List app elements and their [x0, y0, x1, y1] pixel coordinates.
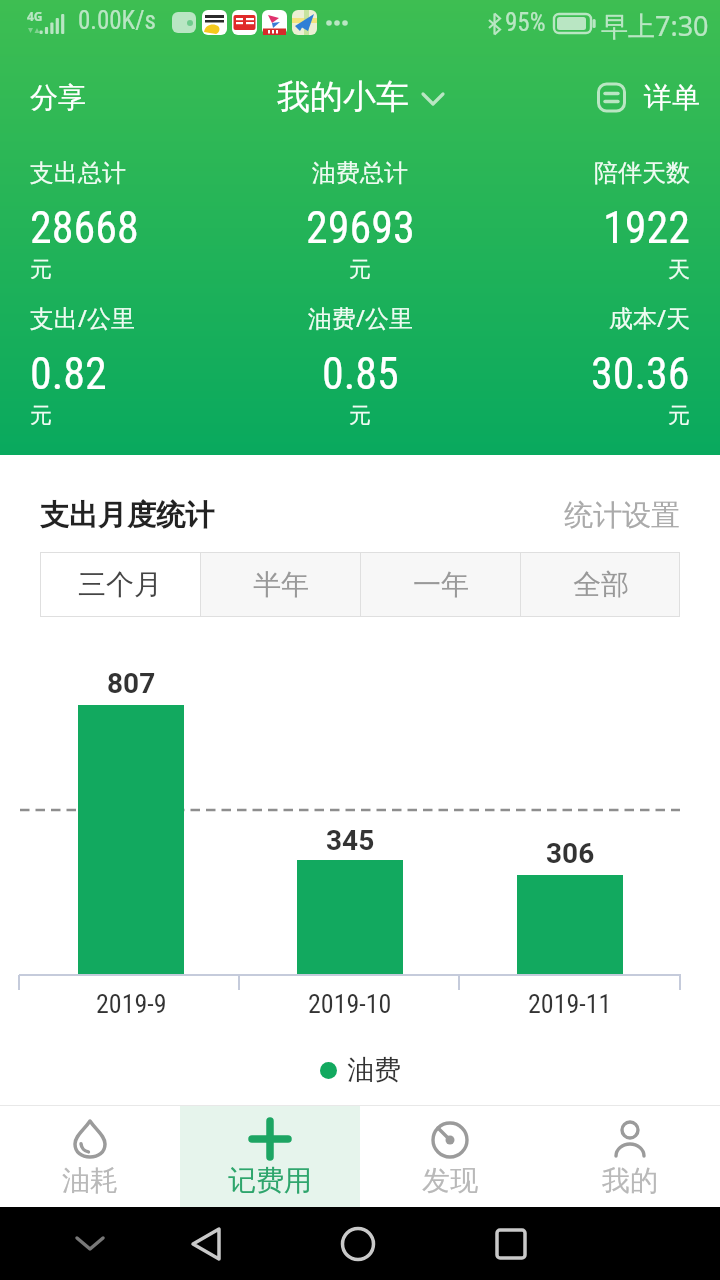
staticText: 29693: [306, 202, 415, 254]
staticText: 345: [326, 824, 375, 857]
staticText: 0.82: [30, 348, 107, 400]
staticText: 28668: [30, 202, 139, 254]
staticText: 一年: [413, 567, 469, 602]
staticText: 4G: [27, 8, 43, 24]
staticText: 支出总计: [30, 158, 126, 188]
staticText: 306: [546, 837, 595, 870]
staticText: 元: [349, 402, 371, 430]
staticText: 天: [668, 256, 690, 284]
staticText: 30.36: [591, 348, 690, 400]
staticText: 支出月度统计: [40, 497, 214, 534]
staticText: 元: [668, 402, 690, 430]
button[interactable]: 记费用: [180, 1105, 360, 1207]
staticText: 油费总计: [312, 158, 408, 188]
staticText: 元: [349, 256, 371, 284]
staticText: 早上7:30: [601, 7, 709, 44]
button[interactable]: 全部: [521, 552, 680, 617]
staticText: 0.00K/s: [78, 6, 156, 35]
staticText: 1922: [603, 202, 690, 254]
staticText: 我的小车: [277, 76, 409, 118]
staticText: 三个月: [78, 567, 162, 602]
staticText: 元: [30, 256, 52, 284]
staticText: 油费/公里: [308, 301, 413, 334]
staticText: 成本/天: [609, 301, 690, 334]
staticText: 2019-9: [96, 989, 167, 1019]
button[interactable]: 半年: [201, 552, 360, 617]
button[interactable]: 详单: [597, 80, 700, 115]
staticText: 分享: [30, 80, 86, 115]
button[interactable]: 油耗: [0, 1105, 180, 1207]
staticText: 油费: [347, 1053, 401, 1087]
staticText: 2019-10: [308, 989, 392, 1019]
staticText: 807: [107, 667, 156, 700]
staticText: 支出/公里: [30, 301, 135, 334]
staticText: 元: [30, 402, 52, 430]
staticText: 统计设置: [564, 497, 680, 534]
button[interactable]: 统计设置: [564, 497, 680, 534]
staticText: 0.85: [322, 348, 399, 400]
staticText: 记费用: [228, 1163, 312, 1198]
staticText: 发现: [422, 1163, 478, 1198]
staticText: 陪伴天数: [594, 158, 690, 188]
staticText: 我的: [602, 1163, 658, 1198]
button[interactable]: 三个月: [40, 552, 200, 617]
button[interactable]: 一年: [361, 552, 520, 617]
staticText: 95%: [505, 8, 546, 37]
button[interactable]: 我的: [540, 1105, 720, 1207]
button[interactable]: 我的小车: [277, 76, 444, 118]
staticText: 油耗: [62, 1163, 118, 1198]
staticText: 全部: [573, 567, 629, 602]
staticText: 详单: [644, 80, 700, 115]
staticText: 半年: [253, 567, 309, 602]
button[interactable]: 分享: [30, 80, 86, 115]
button[interactable]: 发现: [360, 1105, 540, 1207]
staticText: 2019-11: [528, 989, 612, 1019]
